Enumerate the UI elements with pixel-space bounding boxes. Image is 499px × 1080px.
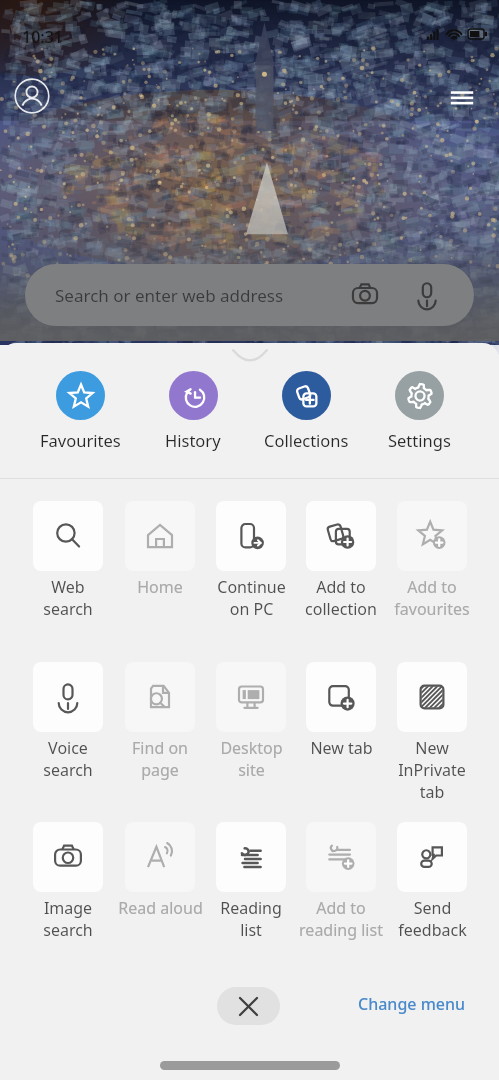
staticText: Send feedback [398,897,467,941]
staticText: Search or enter web address [55,284,284,307]
button[interactable]: Change menu [352,985,472,1023]
staticText: 10:31 [22,26,63,48]
button[interactable]: Continue on PC [203,501,299,620]
staticText: Read aloud [118,897,203,919]
staticText: Home [137,576,183,598]
button[interactable]: Image search [20,822,116,941]
button[interactable]: Find on page [112,662,208,781]
staticText: Add to reading list [299,897,383,941]
staticText: Continue on PC [217,576,286,620]
button[interactable]: Web search [20,501,116,620]
staticText: Web search [43,576,93,620]
staticText: Find on page [132,737,188,781]
button[interactable]: Menu [446,82,478,114]
button[interactable]: Read aloud [112,822,208,919]
button[interactable]: New InPrivate tab [384,662,480,803]
staticText: Add to collection [305,576,377,620]
button[interactable]: Close [217,987,280,1025]
button[interactable]: Home [112,501,208,598]
button[interactable]: Add to collection [293,501,389,620]
staticText: Image search [43,897,93,941]
button[interactable]: Favourites [24,371,136,451]
staticText: New InPrivate tab [398,737,466,803]
button[interactable]: Reading list [203,822,299,941]
staticText: Collections [264,429,349,451]
staticText: Voice search [43,737,93,781]
button[interactable]: History [137,371,249,451]
staticText: Settings [388,429,451,451]
staticText: New tab [310,737,373,759]
button[interactable]: Add to reading list [293,822,389,941]
button[interactable]: Send feedback [384,822,480,941]
button[interactable]: Desktop site [203,662,299,781]
staticText: Reading list [220,897,282,941]
staticText: History [165,429,221,451]
button[interactable]: Search or enter web address [25,264,474,326]
staticText: Desktop site [220,737,283,781]
button[interactable]: Voice search [20,662,116,781]
staticText: Add to favourites [394,576,470,620]
button[interactable]: New tab [293,662,389,759]
button[interactable]: Collections [250,371,362,451]
button[interactable]: Settings [363,371,475,451]
button[interactable]: Profile [14,78,50,114]
staticText: Favourites [40,429,121,451]
staticText: Change menu [358,993,466,1015]
button[interactable]: Add to favourites [384,501,480,620]
